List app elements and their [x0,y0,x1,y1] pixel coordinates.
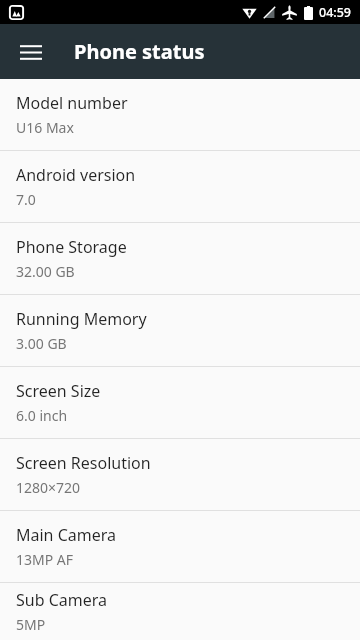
staticText: Screen Size [16,380,101,402]
staticText: Android version [16,164,136,186]
staticText: Screen Resolution [16,452,151,474]
staticText: Phone status [74,38,205,65]
button[interactable]: Open navigation menu [8,29,54,75]
staticText: Model number [16,92,128,114]
staticText: Main Camera [16,524,117,546]
staticText: Phone Storage [16,236,127,258]
staticText: 1280×720 [16,478,81,497]
button[interactable]: Screen Size [0,367,360,438]
button[interactable]: Screen Resolution [0,439,360,510]
staticText: U16 Max [16,118,74,137]
button[interactable]: Running Memory [0,295,360,366]
staticText: 7.0 [16,190,36,209]
staticText: 3.00 GB [16,334,67,353]
staticText: 13MP AF [16,550,74,569]
button[interactable]: Model number [0,79,360,150]
staticText: 04:59 [319,4,352,21]
staticText: 6.0 inch [16,406,68,425]
button[interactable]: Main Camera [0,511,360,582]
staticText: Sub Camera [16,589,108,611]
button[interactable]: Android version [0,151,360,222]
button[interactable]: Phone Storage [0,223,360,294]
button[interactable]: Sub Camera [0,583,360,640]
staticText: 5MP [16,615,46,634]
staticText: 32.00 GB [16,262,75,281]
staticText: Running Memory [16,308,147,330]
